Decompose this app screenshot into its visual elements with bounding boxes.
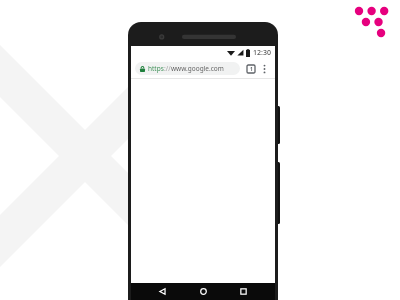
button[interactable]: Home <box>195 283 212 300</box>
staticText: https <box>148 64 164 73</box>
button[interactable]: Recent apps <box>235 283 252 300</box>
button[interactable]: Tabs <box>244 62 257 75</box>
staticText: :// <box>164 64 171 73</box>
staticText: www.google.com <box>171 64 224 73</box>
staticText: 1 <box>250 66 253 73</box>
button[interactable]: Back <box>154 283 171 300</box>
button[interactable]: https <box>135 62 240 75</box>
staticText: 12:30 <box>253 48 271 58</box>
button[interactable]: More options <box>258 62 271 75</box>
